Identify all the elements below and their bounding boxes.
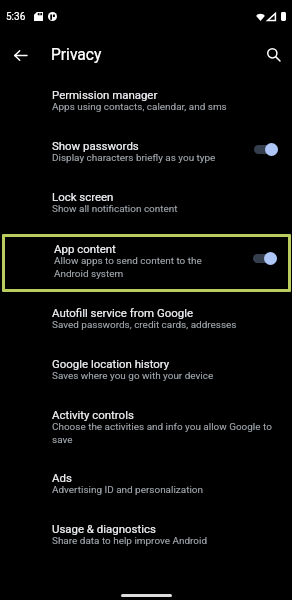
staticText: Activity controls: [52, 408, 134, 421]
staticText: Share data to help improve Android: [52, 535, 208, 547]
staticText: Lock screen: [52, 190, 114, 203]
staticText: Autofill service from Google: [52, 306, 193, 319]
staticText: Privacy: [51, 46, 102, 64]
staticText: Display characters briefly as you type: [52, 152, 216, 164]
button[interactable]: Usage & diagnostics: [0, 509, 292, 560]
button[interactable]: App content: [2, 234, 291, 292]
staticText: 5:36: [6, 11, 26, 23]
staticText: Saved passwords, credit cards, addresses: [52, 319, 237, 331]
button[interactable]: Back: [2, 37, 38, 73]
staticText: Allow apps to send content to the Androi…: [54, 255, 202, 279]
button[interactable]: Search: [256, 37, 292, 73]
staticText: Show passwords: [52, 139, 139, 152]
staticText: Permission manager: [52, 88, 158, 101]
staticText: Google location history: [52, 357, 170, 370]
button[interactable]: Ads: [0, 458, 292, 509]
button[interactable]: Activity controls: [0, 395, 292, 458]
staticText: Usage & diagnostics: [52, 522, 156, 535]
staticText: Choose the activities and info you allow…: [52, 421, 272, 445]
staticText: Advertising ID and personalization: [52, 484, 204, 496]
button[interactable]: Lock screen: [0, 177, 292, 228]
button[interactable]: Autofill service from Google: [0, 293, 292, 344]
staticText: App content: [54, 242, 116, 255]
button[interactable]: Show passwords: [0, 126, 292, 177]
staticText: Ads: [52, 471, 72, 484]
staticText: Show all notification content: [52, 203, 178, 215]
button[interactable]: Permission manager: [0, 76, 292, 126]
staticText: Apps using contacts, calendar, and sms: [52, 101, 227, 113]
button[interactable]: Google location history: [0, 344, 292, 395]
staticText: Saves where you go with your device: [52, 370, 214, 382]
